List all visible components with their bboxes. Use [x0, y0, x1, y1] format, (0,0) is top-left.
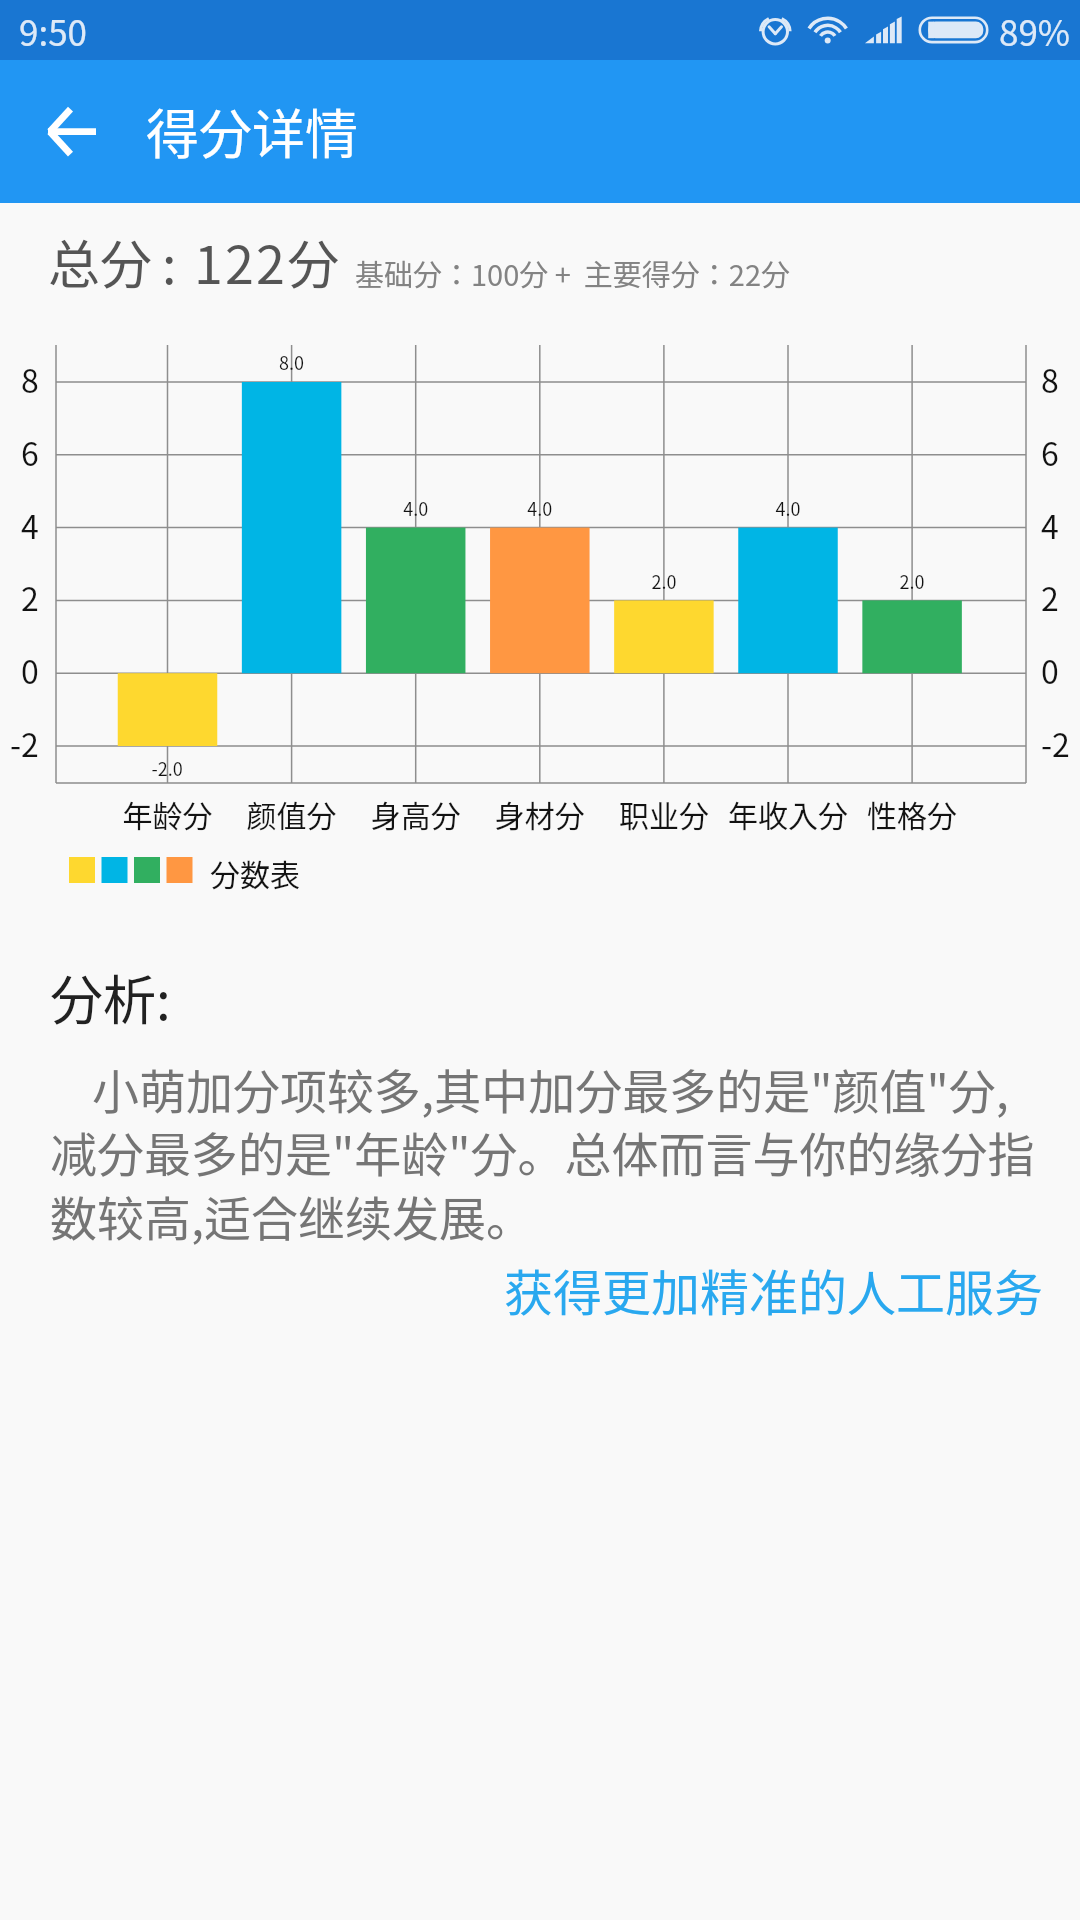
button[interactable]: Back	[12, 72, 132, 192]
staticText: 得分详情	[146, 93, 358, 170]
staticText: 基础分：100分 + 主要得分：22分	[355, 252, 791, 294]
staticText: 分析:	[50, 959, 171, 1036]
button[interactable]: 获得更加精准的人工服务	[500, 1254, 1044, 1329]
staticText: 小萌加分项较多,其中加分最多的是"颜值"分, 减分最多的是"年龄"分。总体而言与…	[50, 1054, 1035, 1250]
staticText: 获得更加精准的人工服务	[504, 1254, 1044, 1325]
staticText: :	[162, 224, 177, 299]
staticText: 122分	[194, 224, 342, 299]
staticText: 总分	[48, 224, 153, 299]
